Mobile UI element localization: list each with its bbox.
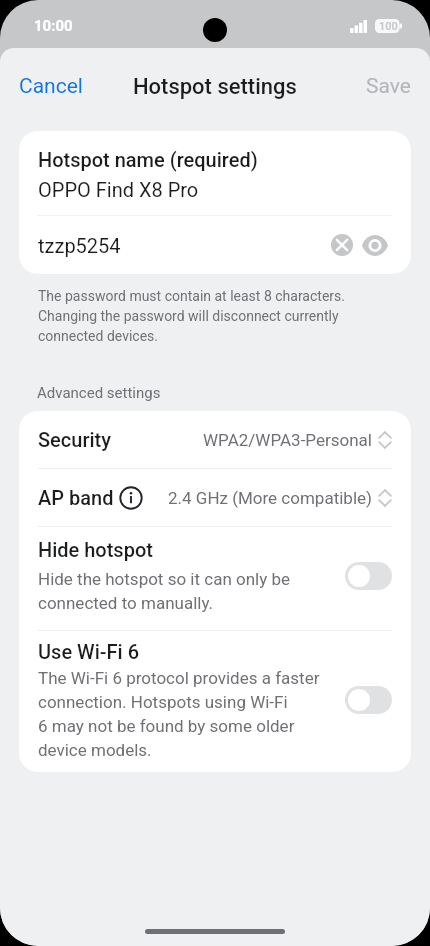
staticText: Hotspot settings	[133, 74, 297, 100]
staticText: The Wi-Fi 6 protocol provides a faster c…	[38, 668, 320, 760]
staticText: 100	[379, 20, 398, 33]
staticText: Advanced settings	[37, 384, 161, 402]
staticText: OPPO Find X8 Pro	[38, 178, 199, 201]
button[interactable]: Security	[19, 411, 411, 468]
button[interactable]: Clear text	[331, 234, 353, 256]
staticText: Security	[38, 428, 112, 451]
staticText: WPA2/WPA3-Personal	[203, 430, 372, 450]
staticText: Save	[366, 74, 411, 99]
staticText: AP band	[38, 486, 114, 509]
staticText: Hide the hotspot so it can only be conne…	[38, 569, 291, 613]
staticText: Cancel	[19, 74, 83, 99]
button[interactable]: Toggle	[345, 562, 392, 590]
button[interactable]: Hotspot name (required)	[19, 131, 411, 215]
button[interactable]: Cancel	[0, 61, 102, 112]
button[interactable]: More information	[119, 486, 143, 510]
button[interactable]: Save	[347, 61, 430, 112]
staticText: Use Wi-Fi 6	[38, 640, 140, 663]
button[interactable]: Use Wi-Fi 6	[19, 631, 411, 772]
staticText: 2.4 GHz (More compatible)	[168, 488, 372, 508]
staticText: Hotspot name (required)	[38, 148, 258, 171]
staticText: Hide hotspot	[38, 538, 153, 561]
button[interactable]: Toggle	[345, 686, 392, 714]
button[interactable]: AP band	[19, 469, 411, 526]
button[interactable]: Hide hotspot	[19, 527, 411, 630]
staticText: tzzp5254	[38, 234, 331, 257]
button[interactable]: Show password	[362, 235, 388, 256]
staticText: The password must contain at least 8 cha…	[38, 288, 345, 344]
staticText: 10:00	[34, 17, 73, 35]
